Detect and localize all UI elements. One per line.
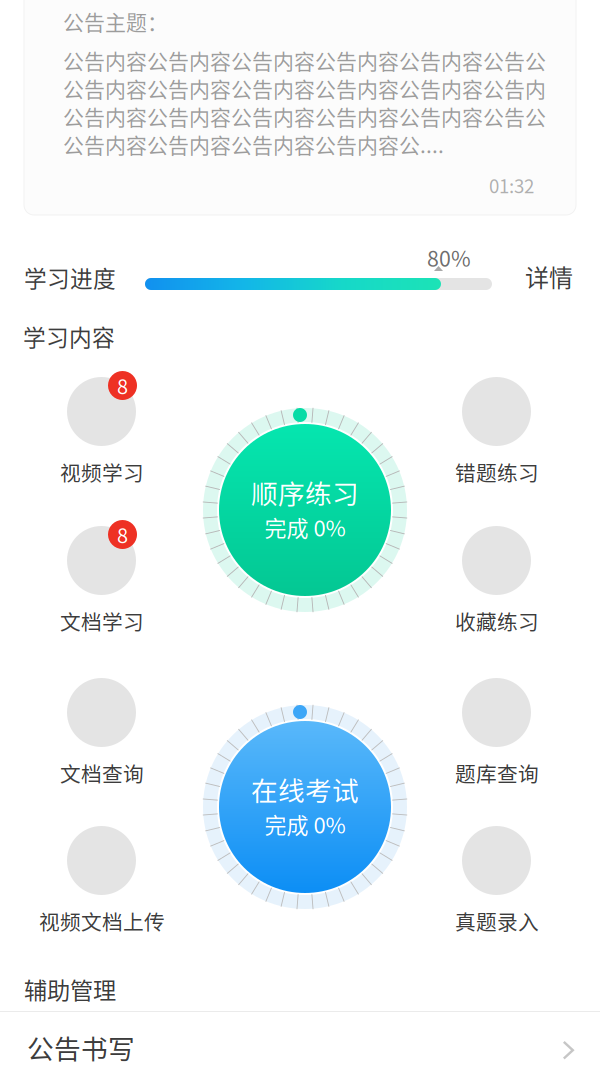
staticText: 01:32 <box>489 171 534 198</box>
button[interactable]: 8 <box>12 526 192 638</box>
staticText: 辅助管理 <box>24 972 116 1006</box>
staticText: 8 <box>117 371 128 400</box>
staticText: 错题练习 <box>455 457 539 487</box>
staticText: 学习内容 <box>23 320 115 353</box>
staticText: 80% <box>427 242 471 273</box>
staticText: 公告内容公告内容公告内容公告内容公告内容公告公 <box>63 45 546 75</box>
staticText: 公告内容公告内容公告内容公告内容公.... <box>63 129 444 159</box>
staticText: 视频学习 <box>60 457 144 487</box>
staticText: 公告主题： <box>63 6 168 36</box>
staticText: 真题录入 <box>455 906 539 936</box>
staticText: 公告书写 <box>27 1028 135 1067</box>
staticText: 视频文档上传 <box>39 906 165 936</box>
button[interactable]: 题库查询 <box>407 678 587 790</box>
button[interactable]: 公告书写 <box>0 1012 600 1067</box>
staticText: 详情 <box>525 259 573 294</box>
staticText: 文档学习 <box>60 606 144 636</box>
button[interactable]: 错题练习 <box>407 377 587 489</box>
staticText: 公告内容公告内容公告内容公告内容公告内容公告公 <box>63 101 546 131</box>
button[interactable]: 文档查询 <box>12 678 192 790</box>
staticText: 8 <box>117 520 128 549</box>
button[interactable]: 视频文档上传 <box>12 826 192 938</box>
button[interactable]: 真题录入 <box>407 826 587 938</box>
staticText: 收藏练习 <box>455 606 539 636</box>
staticText: 完成 0% <box>264 808 345 840</box>
button[interactable]: 8 <box>12 377 192 489</box>
staticText: 在线考试 <box>251 770 359 808</box>
button[interactable]: 在线考试 <box>203 705 407 909</box>
staticText: 顺序练习 <box>251 473 359 511</box>
button[interactable]: 顺序练习 <box>203 408 407 612</box>
staticText: 学习进度 <box>24 261 116 294</box>
staticText: 公告内容公告内容公告内容公告内容公告内容公告内 <box>63 73 546 103</box>
staticText: 题库查询 <box>455 758 539 788</box>
staticText: 文档查询 <box>60 758 144 788</box>
button[interactable]: 收藏练习 <box>407 526 587 638</box>
staticText: 完成 0% <box>264 511 345 543</box>
